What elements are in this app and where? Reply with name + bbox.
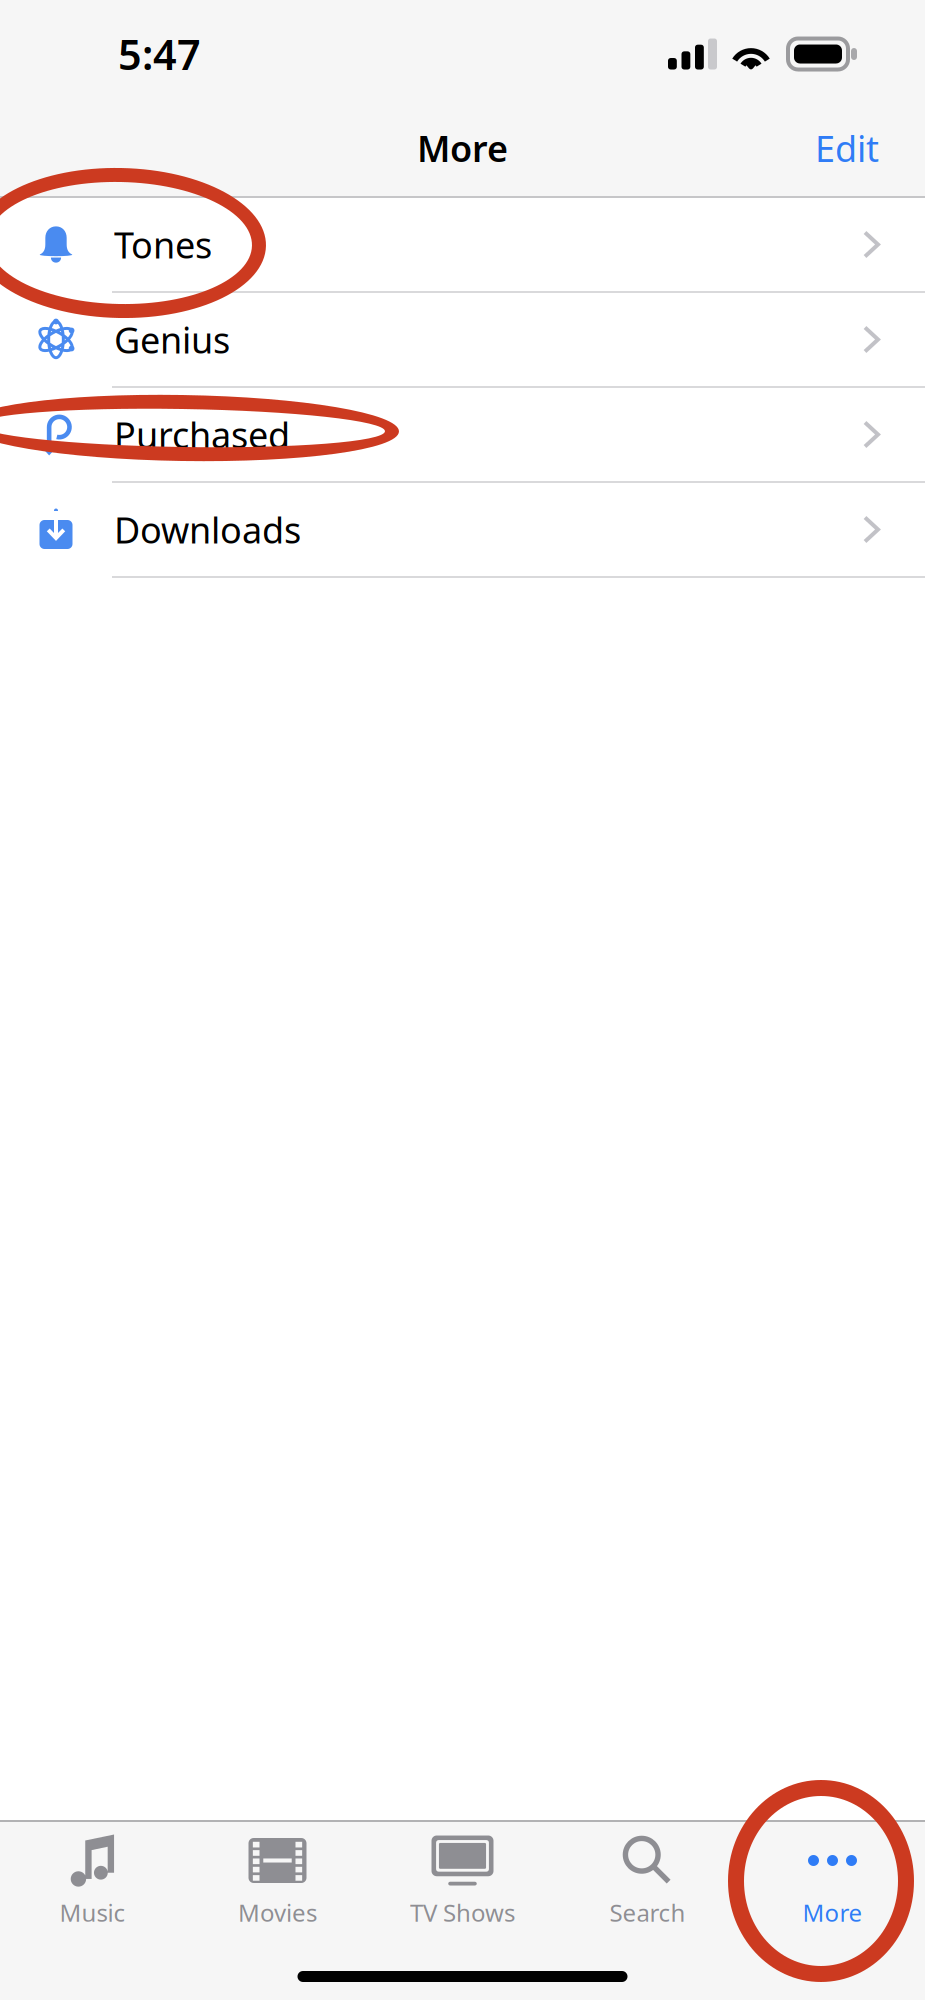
button[interactable]: Tones (0, 198, 925, 293)
button[interactable]: Movies (185, 1810, 370, 1958)
staticText: Movies (238, 1896, 317, 1928)
button[interactable]: Purchased (0, 388, 925, 483)
staticText: Genius (114, 316, 230, 363)
staticText: Edit (815, 124, 879, 172)
staticText: More (802, 1896, 862, 1928)
button[interactable]: Downloads (0, 483, 925, 578)
staticText: Purchased (114, 411, 290, 458)
button[interactable]: Search (555, 1810, 740, 1958)
button[interactable]: TV Shows (370, 1810, 555, 1958)
staticText: Search (609, 1896, 685, 1928)
staticText: Music (59, 1896, 125, 1928)
staticText: More (417, 124, 508, 172)
button[interactable]: Genius (0, 293, 925, 388)
button[interactable]: More (740, 1810, 925, 1958)
button[interactable]: Music (0, 1810, 185, 1958)
staticText: Tones (114, 221, 212, 268)
staticText: TV Shows (410, 1896, 515, 1928)
staticText: Downloads (114, 506, 301, 553)
button[interactable]: Edit (797, 110, 897, 186)
staticText: 5:47 (118, 27, 201, 81)
